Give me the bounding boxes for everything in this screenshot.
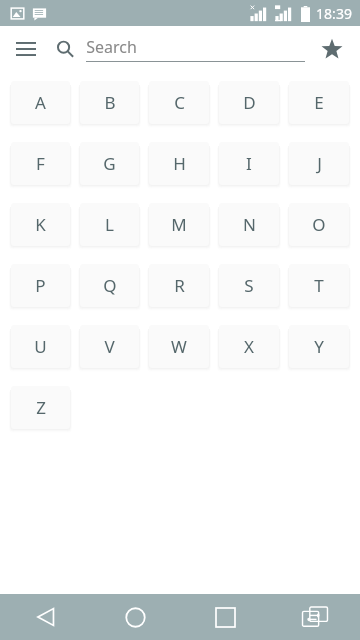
staticText: C bbox=[174, 91, 185, 114]
button[interactable]: L bbox=[80, 203, 139, 246]
staticText: Q bbox=[103, 274, 117, 297]
staticText: B bbox=[104, 91, 116, 114]
staticText: E bbox=[314, 91, 324, 114]
button[interactable]: Recent apps bbox=[180, 594, 270, 640]
button[interactable]: Q bbox=[80, 264, 139, 307]
button[interactable]: Home bbox=[90, 594, 180, 640]
button[interactable]: K bbox=[11, 203, 70, 246]
staticText: A bbox=[35, 91, 46, 114]
button[interactable]: B bbox=[80, 81, 139, 124]
button[interactable]: H bbox=[149, 142, 209, 185]
staticText: S bbox=[244, 274, 254, 297]
staticText: N bbox=[243, 213, 256, 236]
staticText: R bbox=[174, 274, 185, 297]
staticText: X bbox=[244, 335, 254, 358]
button[interactable]: A bbox=[11, 81, 70, 124]
button[interactable]: J bbox=[289, 142, 349, 185]
staticText: Search bbox=[86, 36, 137, 58]
staticText: D bbox=[243, 91, 256, 114]
button[interactable]: W bbox=[149, 325, 209, 368]
staticText: G bbox=[103, 152, 116, 175]
button[interactable]: X bbox=[219, 325, 279, 368]
staticText: P bbox=[35, 274, 46, 297]
button[interactable]: D bbox=[219, 81, 279, 124]
button[interactable]: Y bbox=[289, 325, 349, 368]
button[interactable]: V bbox=[80, 325, 139, 368]
button[interactable]: Back bbox=[0, 594, 90, 640]
staticText: V bbox=[104, 335, 115, 358]
button[interactable]: P bbox=[11, 264, 70, 307]
button[interactable]: Z bbox=[11, 386, 70, 429]
button[interactable]: T bbox=[289, 264, 349, 307]
button[interactable]: O bbox=[289, 203, 349, 246]
button[interactable]: M bbox=[149, 203, 209, 246]
button[interactable]: Search bbox=[56, 36, 305, 62]
staticText: M bbox=[171, 213, 187, 236]
staticText: J bbox=[317, 152, 322, 175]
button[interactable]: C bbox=[149, 81, 209, 124]
button[interactable]: Switch app bbox=[270, 594, 360, 640]
button[interactable]: Menu bbox=[6, 29, 46, 69]
button[interactable]: Favorites bbox=[312, 29, 352, 69]
staticText: W bbox=[171, 335, 187, 358]
staticText: H bbox=[173, 152, 186, 175]
button[interactable]: R bbox=[149, 264, 209, 307]
staticText: F bbox=[36, 152, 45, 175]
staticText: O bbox=[312, 213, 326, 236]
staticText: K bbox=[35, 213, 46, 236]
button[interactable]: U bbox=[11, 325, 70, 368]
staticText: 18:39 bbox=[316, 4, 352, 23]
staticText: L bbox=[105, 213, 114, 236]
button[interactable]: E bbox=[289, 81, 349, 124]
staticText: T bbox=[314, 274, 324, 297]
staticText: Z bbox=[36, 396, 46, 419]
staticText: Y bbox=[314, 335, 324, 358]
button[interactable]: S bbox=[219, 264, 279, 307]
button[interactable]: I bbox=[219, 142, 279, 185]
staticText: I bbox=[246, 152, 252, 175]
button[interactable]: N bbox=[219, 203, 279, 246]
staticText: U bbox=[34, 335, 47, 358]
button[interactable]: F bbox=[11, 142, 70, 185]
button[interactable]: G bbox=[80, 142, 139, 185]
